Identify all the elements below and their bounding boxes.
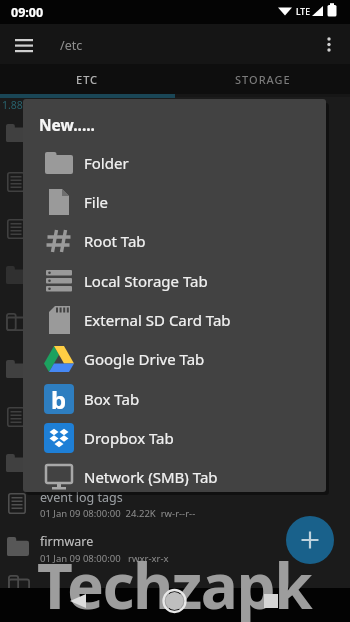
staticText: 01 Jan 09 08:00:00 rwxr-xr-x: [40, 552, 169, 565]
button[interactable]: STORAGE: [175, 64, 350, 94]
staticText: File: [84, 192, 108, 212]
staticText: 1.88: [2, 98, 23, 112]
staticText: event log tags: [40, 489, 123, 506]
button[interactable]: [286, 516, 334, 564]
button[interactable]: Root Tab: [23, 221, 326, 260]
button[interactable]: Folder: [23, 143, 326, 182]
button[interactable]: [318, 32, 342, 58]
button[interactable]: External SD Card Tab: [23, 300, 326, 339]
staticText: b: [51, 384, 67, 413]
button[interactable]: [0, 488, 350, 534]
staticText: Dropbox Tab: [84, 428, 174, 448]
button[interactable]: [0, 534, 350, 580]
button[interactable]: File: [23, 182, 326, 221]
staticText: ETC: [76, 72, 99, 87]
button[interactable]: Network (SMB) Tab: [23, 457, 326, 492]
staticText: LTE: [296, 6, 310, 18]
button[interactable]: [58, 588, 98, 622]
button[interactable]: [8, 32, 40, 58]
staticText: Folder: [84, 153, 129, 173]
staticText: 09:00: [11, 4, 44, 21]
staticText: /etc: [60, 37, 83, 54]
staticText: STORAGE: [235, 72, 291, 87]
staticText: New.....: [39, 114, 95, 135]
button[interactable]: Box Tab: [23, 379, 326, 418]
button[interactable]: Dropbox Tab: [23, 418, 326, 457]
staticText: Network (SMB) Tab: [84, 467, 218, 487]
button[interactable]: Local Storage Tab: [23, 261, 326, 300]
staticText: 01 Jan 09 08:00:00 24.22K rw-r--r--: [40, 507, 196, 520]
button[interactable]: [252, 588, 292, 622]
staticText: Local Storage Tab: [84, 271, 208, 291]
button[interactable]: Google Drive Tab: [23, 339, 326, 378]
staticText: Root Tab: [84, 231, 146, 251]
staticText: Techzapk: [37, 543, 312, 622]
staticText: firmware: [40, 533, 94, 550]
button[interactable]: [155, 588, 195, 622]
button[interactable]: ETC: [0, 64, 175, 94]
staticText: Google Drive Tab: [84, 349, 205, 369]
staticText: External SD Card Tab: [84, 310, 231, 330]
staticText: Box Tab: [84, 389, 140, 409]
